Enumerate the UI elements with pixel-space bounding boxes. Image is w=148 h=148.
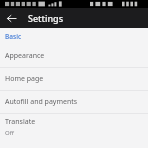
staticText: Basic [5, 32, 22, 41]
button[interactable]: Home page [0, 68, 148, 90]
staticText: Off [5, 129, 14, 137]
staticText: Home page [5, 74, 44, 84]
button[interactable]: Autofill and payments [0, 91, 148, 113]
button[interactable]: Translate [0, 114, 148, 140]
staticText: Autofill and payments [5, 97, 78, 107]
staticText: Appearance [5, 51, 45, 61]
staticText: Translate [5, 117, 36, 127]
button[interactable]: Back [0, 8, 22, 28]
staticText: Settings [28, 12, 64, 24]
button[interactable]: Appearance [0, 45, 148, 67]
